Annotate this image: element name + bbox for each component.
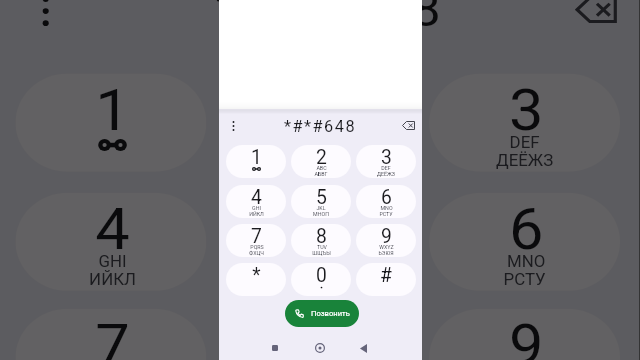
button[interactable]: # [356,263,416,296]
staticText: GHI [98,252,127,270]
staticText: WXYZ [379,244,394,250]
button[interactable]: 9 [429,309,620,360]
staticText: 9 [381,225,392,248]
staticText: 1 [251,146,262,169]
staticText: 8 [302,312,337,360]
staticText: 6 [509,196,544,264]
staticText: *#*#648 [284,117,357,136]
button[interactable]: 9 [356,224,416,257]
button[interactable]: 8 [222,309,413,360]
button[interactable]: 6 [429,193,620,291]
staticText: * [252,264,261,287]
button[interactable]: Recents [263,336,287,360]
staticText: РСТУ [502,270,547,288]
staticText: 5 [316,186,327,209]
staticText: MNO [505,252,547,270]
staticText: 3 [381,146,392,169]
staticText: 2 [316,146,327,169]
staticText: 0 [316,264,327,287]
staticText: ФХЦЧ [249,250,264,256]
button[interactable]: 4 [15,193,206,291]
staticText: DEF [381,165,391,171]
staticText: # [380,264,392,287]
button[interactable]: 2 [222,74,413,172]
staticText: MNO [380,205,393,211]
staticText: ШЩЪЫ [312,250,331,256]
staticText: 7 [251,225,262,248]
staticText: 1 [95,77,130,145]
staticText: 7 [95,312,130,360]
button[interactable]: 7 [15,309,206,360]
staticText: МНОП [292,270,343,288]
button[interactable]: 8 [291,224,351,257]
button[interactable]: Позвонить [285,300,359,327]
staticText: 4 [251,186,262,209]
staticText: ИЙКЛ [89,270,136,288]
staticText: GHI [252,205,261,211]
staticText: 3 [509,77,544,145]
button[interactable]: 5 [291,185,351,218]
staticText: *#*#648 [216,0,448,38]
staticText: DEF [509,133,540,151]
staticText: ИЙКЛ [249,211,264,217]
staticText: TUV [317,244,327,250]
staticText: МНОП [313,211,329,217]
staticText: ЬЭЮЯ [378,250,394,256]
button[interactable]: * [226,263,286,296]
button[interactable]: 7 [226,224,286,257]
button[interactable]: 0 [291,263,351,296]
staticText: РСТУ [379,211,393,217]
staticText: 4 [95,196,130,264]
button[interactable]: Backspace [566,0,626,38]
staticText: ДЕЁЖЗ [496,151,553,169]
button[interactable]: 1 [226,145,286,178]
button[interactable]: 3 [356,145,416,178]
staticText: JKL [316,205,326,211]
staticText: JKL [302,252,334,270]
button[interactable]: 6 [356,185,416,218]
staticText: 5 [302,196,337,264]
staticText: Позвонить [311,309,350,318]
button[interactable]: More options [225,117,242,134]
button[interactable]: 4 [226,185,286,218]
button[interactable]: 3 [429,74,620,172]
button[interactable]: 1 [15,74,206,172]
staticText: PQRS [250,244,264,250]
button[interactable]: 2 [291,145,351,178]
staticText: 8 [316,225,327,248]
staticText: ABC [302,133,337,151]
button[interactable]: Backspace [399,116,418,135]
staticText: АБВГ [314,171,328,177]
button[interactable]: Home [308,336,332,360]
staticText: ABC [316,165,327,171]
button[interactable]: More options [19,0,73,35]
button[interactable]: 5 [222,193,413,291]
staticText: ДЕЁЖЗ [377,171,395,177]
staticText: 6 [381,186,392,209]
staticText: АБВГ [295,151,340,169]
staticText: 9 [509,312,544,360]
staticText: 2 [302,77,337,145]
button[interactable]: Back [351,336,375,360]
